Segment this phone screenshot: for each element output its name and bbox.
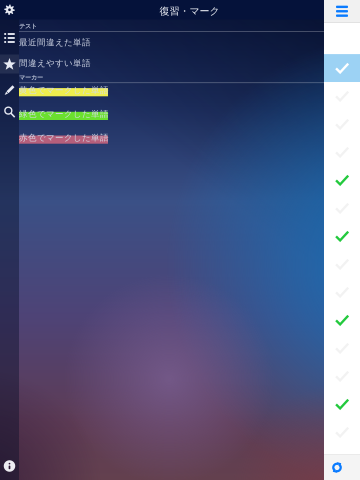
button[interactable]: Refresh [326,456,348,478]
button[interactable]: Marked words [0,54,19,73]
staticText: テスト [19,22,37,30]
staticText: 赤色でマークした単語 [19,132,109,143]
staticText: マーカー [19,73,43,81]
button[interactable]: Menu [324,0,360,22]
button[interactable]: Edit [0,80,19,99]
button[interactable]: Learned [324,306,360,334]
staticText: 黄色でマークした単語 [19,85,109,96]
button[interactable]: Information [0,456,19,476]
button[interactable]: 黄色でマークした単語 [19,83,324,107]
button[interactable]: All words [0,28,19,47]
staticText: 間違えやすい単語 [19,58,91,69]
button[interactable]: Learned [324,222,360,250]
button[interactable]: Not learned [324,54,360,82]
staticText: 復習・マーク [159,5,219,18]
staticText: 最近間違えた単語 [19,37,91,48]
button[interactable]: 最近間違えた単語 [19,32,324,53]
button[interactable]: 赤色でマークした単語 [19,130,324,154]
button[interactable]: 緑色でマークした単語 [19,107,324,130]
button[interactable]: Search [0,102,19,121]
button[interactable]: Settings [0,0,19,19]
button[interactable]: Learned [324,390,360,418]
staticText: 緑色でマークした単語 [19,108,109,119]
button[interactable]: 間違えやすい単語 [19,53,324,74]
button[interactable]: Learned [324,166,360,194]
